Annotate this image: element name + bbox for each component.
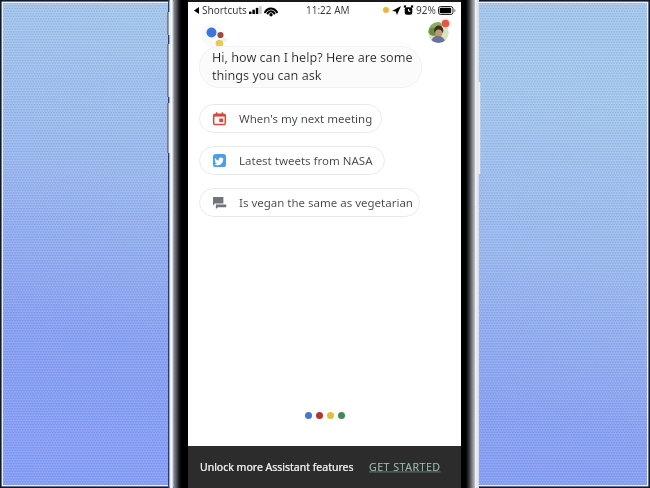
button[interactable]: Unlock more Assistant features xyxy=(188,446,461,488)
staticText: 11:22 AM xyxy=(306,3,350,17)
button[interactable]: When's my next meeting xyxy=(199,104,382,133)
button[interactable]: Account xyxy=(424,18,451,45)
staticText: GET STARTED xyxy=(369,460,441,474)
staticText: 92% xyxy=(416,3,436,17)
staticText: Hi, how can I help? Here are some things… xyxy=(212,49,416,84)
button[interactable]: Is vegan the same as vegetarian xyxy=(199,188,420,217)
staticText: Is vegan the same as vegetarian xyxy=(239,195,413,211)
staticText: Latest tweets from NASA xyxy=(239,153,373,169)
staticText: When's my next meeting xyxy=(239,111,373,127)
button[interactable]: Latest tweets from NASA xyxy=(199,146,385,175)
staticText: Unlock more Assistant features xyxy=(200,460,354,474)
staticText: Shortcuts xyxy=(202,3,247,17)
